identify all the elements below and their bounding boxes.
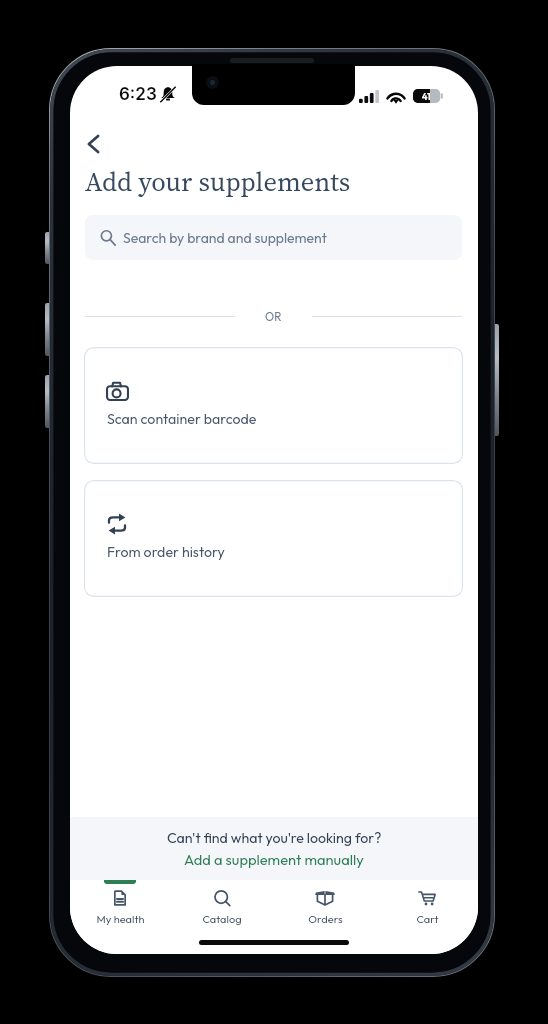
- button[interactable]: Add a supplement manually: [184, 850, 364, 869]
- staticText: OR: [265, 309, 282, 323]
- button[interactable]: From order history: [84, 480, 463, 597]
- staticText: 41: [422, 91, 431, 102]
- staticText: 6:23: [119, 84, 157, 105]
- button[interactable]: Orders: [277, 880, 373, 938]
- staticText: Search by brand and supplement: [123, 229, 327, 247]
- staticText: Add your supplements: [85, 164, 351, 200]
- staticText: Scan container barcode: [107, 410, 257, 428]
- staticText: Catalog: [202, 912, 242, 926]
- staticText: Can't find what you're looking for?: [167, 829, 382, 847]
- button[interactable]: Scan container barcode: [84, 347, 463, 464]
- button[interactable]: Cart: [379, 880, 475, 938]
- staticText: Cart: [416, 912, 439, 926]
- button[interactable]: Search by brand and supplement: [85, 215, 462, 260]
- staticText: Orders: [308, 912, 343, 926]
- button[interactable]: Catalog: [174, 880, 270, 938]
- staticText: My health: [96, 912, 145, 926]
- button[interactable]: My health: [72, 880, 168, 938]
- button[interactable]: Back: [73, 124, 113, 164]
- staticText: From order history: [107, 543, 225, 561]
